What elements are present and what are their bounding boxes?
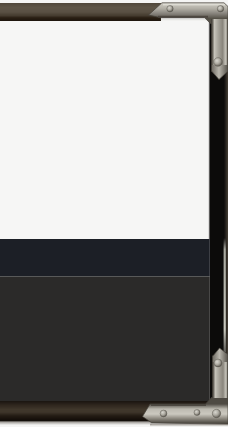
button[interactable] (0, 0, 228, 427)
